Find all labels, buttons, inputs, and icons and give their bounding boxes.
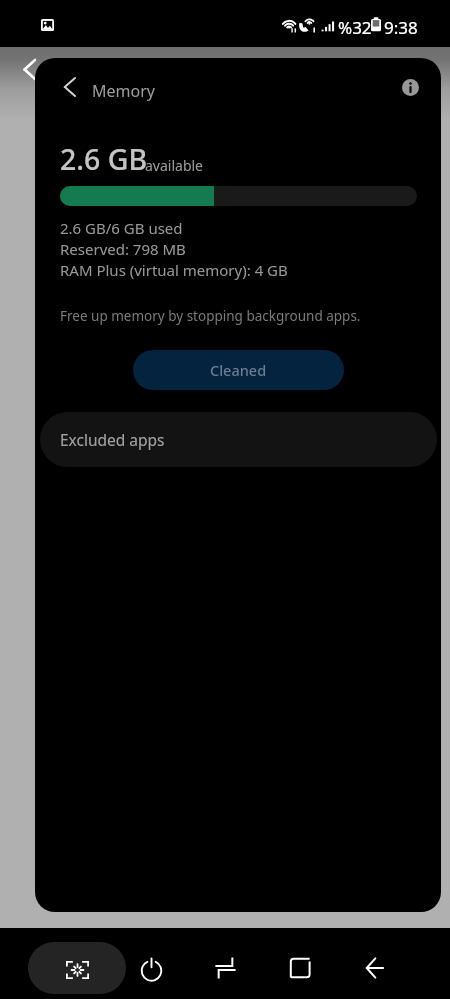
button[interactable]: Navigate up: [47, 58, 93, 120]
button[interactable]: Back: [354, 944, 395, 992]
staticText: %32: [338, 16, 372, 39]
button[interactable]: Recents: [279, 944, 320, 992]
staticText: Excluded apps: [60, 429, 165, 450]
button[interactable]: Power: [131, 944, 172, 992]
staticText: available: [145, 156, 204, 175]
staticText: Reserved: 798 MB: [60, 239, 186, 259]
button[interactable]: Information: [388, 58, 432, 120]
staticText: 2.6 GB: [60, 140, 148, 179]
button[interactable]: Switch apps: [205, 944, 246, 992]
button[interactable]: Cleaned: [133, 350, 344, 390]
staticText: 9:38: [384, 16, 418, 39]
button[interactable]: Excluded apps: [40, 412, 437, 467]
button[interactable]: Screenshot: [28, 942, 126, 994]
staticText: Memory: [92, 80, 155, 102]
staticText: 2.6 GB/6 GB used: [60, 218, 183, 238]
staticText: Cleaned: [210, 360, 267, 380]
staticText: Free up memory by stopping background ap…: [60, 307, 361, 325]
staticText: RAM Plus (virtual memory): 4 GB: [60, 260, 288, 280]
other: Back: [24, 60, 35, 79]
